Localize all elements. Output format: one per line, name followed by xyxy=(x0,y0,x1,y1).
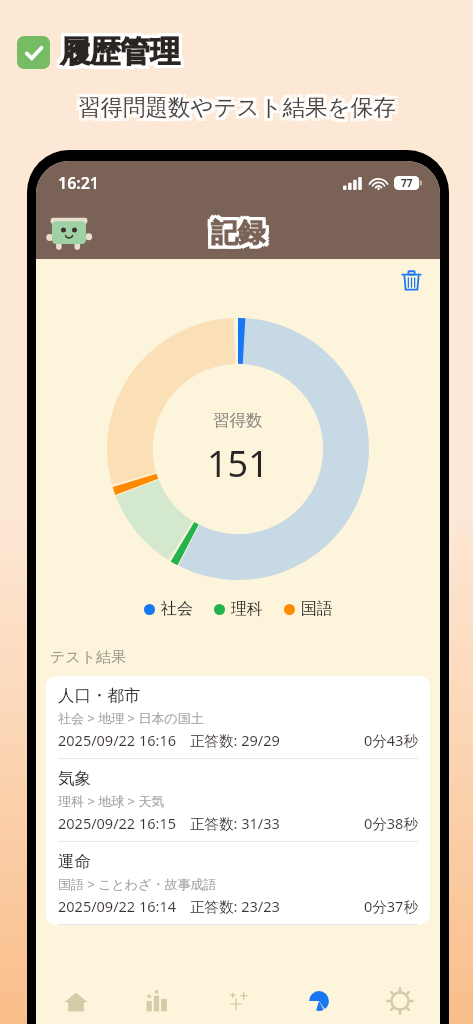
staticText: 国語 xyxy=(301,599,333,619)
staticText: 記録 xyxy=(211,219,265,253)
staticText: 0分37秒 xyxy=(364,896,418,916)
staticText: 0分38秒 xyxy=(364,813,418,833)
staticText: 記録 xyxy=(208,213,262,247)
staticText: 0分43秒 xyxy=(364,730,418,750)
staticText: 習得問題数やテスト結果を保存 xyxy=(78,96,396,124)
staticText: 習得問題数やテスト結果を保存 xyxy=(81,90,399,118)
staticText: 習得数 xyxy=(213,410,263,431)
button[interactable]: 社会 xyxy=(142,597,195,621)
staticText: 記録 xyxy=(214,219,268,253)
staticText: 2025/09/22 16:15 xyxy=(58,813,176,833)
staticText: 記録 xyxy=(208,219,262,253)
staticText: テスト結果 xyxy=(50,648,127,667)
staticText: 理科 xyxy=(231,599,263,619)
staticText: 履歴管理 xyxy=(60,36,180,74)
staticText: 正答数: 23/23 xyxy=(190,896,280,916)
staticText: 習得問題数やテスト結果を保存 xyxy=(81,93,399,121)
staticText: 履歴管理 xyxy=(63,33,183,71)
staticText: 履歴管理 xyxy=(57,30,177,68)
staticText: 履歴管理 xyxy=(57,36,177,74)
staticText: 履歴管理 xyxy=(63,36,183,74)
button[interactable]: Practice xyxy=(197,980,278,1024)
staticText: 理科 > 地球 > 天気 xyxy=(58,792,165,810)
staticText: 習得問題数やテスト結果を保存 xyxy=(81,96,399,124)
button[interactable]: Settings xyxy=(359,980,440,1024)
button[interactable]: Records xyxy=(278,980,359,1024)
staticText: 履歴管理 xyxy=(63,30,183,68)
staticText: 気象 xyxy=(58,768,91,789)
staticText: 151 xyxy=(207,439,269,488)
other: App mascot xyxy=(46,214,92,252)
button[interactable]: 気象 xyxy=(46,759,430,842)
button[interactable]: Delete history xyxy=(396,265,426,295)
button[interactable]: 理科 xyxy=(212,597,265,621)
button[interactable]: 運命 xyxy=(46,842,430,925)
staticText: 人口・都市 xyxy=(58,685,141,706)
button[interactable]: Home xyxy=(36,980,116,1024)
staticText: 社会 xyxy=(161,599,193,619)
staticText: 記録 xyxy=(208,216,262,250)
staticText: 記録 xyxy=(214,216,268,250)
button[interactable]: 国語 xyxy=(282,597,335,621)
staticText: 正答数: 31/33 xyxy=(190,813,280,833)
staticText: 記録 xyxy=(211,216,265,250)
staticText: 2025/09/22 16:16 xyxy=(58,730,176,750)
staticText: 習得問題数やテスト結果を保存 xyxy=(75,93,393,121)
staticText: 正答数: 29/29 xyxy=(190,730,280,750)
staticText: 国語 > ことわざ・故事成語 xyxy=(58,875,217,893)
staticText: 記録 xyxy=(214,213,268,247)
staticText: 77 xyxy=(401,176,413,190)
staticText: 履歴管理 xyxy=(57,33,177,71)
button[interactable]: 人口・都市 xyxy=(46,676,430,759)
staticText: 記録 xyxy=(211,213,265,247)
staticText: 習得問題数やテスト結果を保存 xyxy=(75,96,393,124)
staticText: 運命 xyxy=(58,851,91,872)
staticText: 履歴管理 xyxy=(60,30,180,68)
staticText: 社会 > 地理 > 日本の国土 xyxy=(58,709,204,727)
staticText: 習得問題数やテスト結果を保存 xyxy=(78,93,396,121)
staticText: 履歴管理 xyxy=(60,33,180,71)
staticText: 2025/09/22 16:14 xyxy=(58,896,176,916)
button[interactable]: Stats xyxy=(116,980,197,1024)
staticText: 16:21 xyxy=(58,172,100,194)
staticText: 習得問題数やテスト結果を保存 xyxy=(75,90,393,118)
staticText: 習得問題数やテスト結果を保存 xyxy=(78,90,396,118)
